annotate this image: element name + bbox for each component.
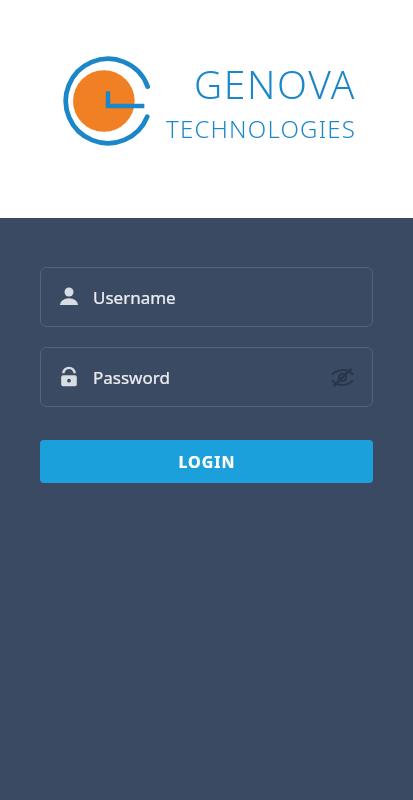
staticText: Username xyxy=(93,286,176,309)
staticText: GENOVA xyxy=(194,57,357,110)
staticText: TECHNOLOGIES xyxy=(166,112,357,145)
button[interactable]: Username xyxy=(40,267,373,327)
button[interactable]: Show password xyxy=(325,360,359,394)
button[interactable]: LOGIN xyxy=(40,440,373,483)
staticText: Password xyxy=(93,366,170,389)
staticText: LOGIN xyxy=(178,451,236,473)
button[interactable]: Password xyxy=(40,347,373,407)
